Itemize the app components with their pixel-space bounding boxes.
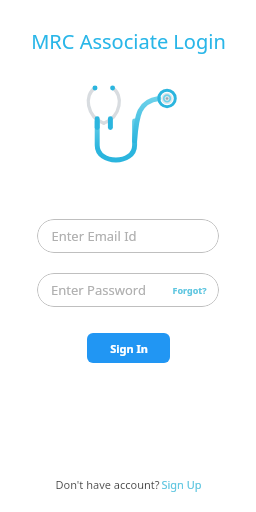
staticText: Forgot?	[172, 284, 207, 296]
staticText: Enter Password	[51, 281, 146, 299]
staticText: Don't have account?	[54, 477, 161, 492]
staticText: Sign Up	[161, 477, 202, 492]
button[interactable]: Sign Up	[161, 477, 202, 492]
button[interactable]: Forgot?	[172, 284, 207, 296]
button[interactable]: Enter Email Id	[37, 219, 219, 253]
staticText: Enter Email Id	[51, 227, 137, 245]
button[interactable]: Sign In	[87, 333, 170, 363]
staticText: MRC Associate Login	[31, 28, 226, 55]
staticText: Sign In	[110, 341, 148, 356]
other: Stethoscope logo	[73, 77, 183, 187]
button[interactable]: Enter Password	[37, 273, 219, 307]
